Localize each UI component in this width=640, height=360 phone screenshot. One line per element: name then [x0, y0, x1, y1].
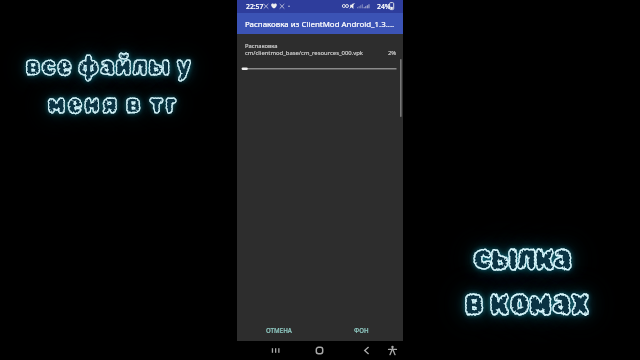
staticText: 24% — [377, 2, 391, 11]
staticText: ОТМЕНА — [266, 326, 292, 334]
button[interactable]: ОТМЕНА — [261, 323, 296, 337]
button[interactable]: Accessibility — [383, 341, 401, 359]
staticText: cm/clientmod_base/cm_resources_000.vpk — [245, 49, 364, 57]
button[interactable]: Back — [357, 341, 375, 359]
button[interactable]: Home — [310, 341, 328, 359]
staticText: 22:57 — [246, 2, 264, 11]
button[interactable]: ФОН — [346, 323, 376, 337]
staticText: Распаковка — [245, 42, 278, 50]
staticText: ФОН — [354, 326, 369, 334]
button[interactable]: Recent apps — [266, 341, 284, 359]
staticText: 2% — [388, 49, 397, 57]
staticText: Распаковка из ClientMod Android_1.3.... — [245, 19, 395, 30]
